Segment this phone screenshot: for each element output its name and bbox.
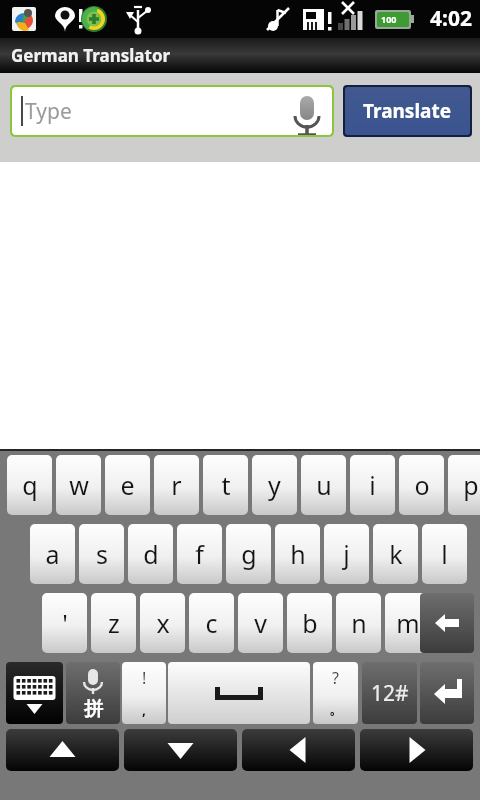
button[interactable]: ' <box>42 593 87 653</box>
button[interactable]: m <box>385 593 430 653</box>
staticText: f <box>195 537 204 571</box>
staticText: b <box>302 606 318 640</box>
button[interactable]: o <box>399 455 444 515</box>
button[interactable]: ? <box>313 662 358 724</box>
staticText: n <box>351 606 367 640</box>
button[interactable]: 拼 <box>66 662 120 724</box>
button[interactable]: v <box>238 593 283 653</box>
staticText: German Translator <box>11 44 171 67</box>
button[interactable]: Hide keyboard <box>6 662 63 724</box>
button[interactable]: Down <box>124 729 237 771</box>
button[interactable]: ! <box>122 662 166 724</box>
staticText: u <box>316 468 332 502</box>
button[interactable]: g <box>226 524 271 584</box>
staticText: l <box>441 537 448 571</box>
button[interactable]: f <box>177 524 222 584</box>
staticText: i <box>369 468 376 502</box>
button[interactable]: d <box>128 524 173 584</box>
button[interactable]: h <box>275 524 320 584</box>
button[interactable]: r <box>154 455 199 515</box>
button[interactable]: q <box>7 455 52 515</box>
button[interactable]: Right <box>360 729 473 771</box>
button[interactable]: a <box>30 524 75 584</box>
staticText: w <box>69 468 89 502</box>
staticText: ? <box>332 667 339 689</box>
staticText: s <box>96 537 108 571</box>
button[interactable]: u <box>301 455 346 515</box>
staticText: a <box>45 537 60 571</box>
staticText: m <box>396 606 420 640</box>
button[interactable]: n <box>336 593 381 653</box>
button[interactable]: p <box>448 455 480 515</box>
button[interactable]: k <box>373 524 418 584</box>
staticText: e <box>120 468 135 502</box>
staticText: 12# <box>371 679 409 708</box>
staticText: k <box>389 537 403 571</box>
staticText: ! <box>142 667 147 689</box>
button[interactable]: e <box>105 455 150 515</box>
button[interactable]: l <box>422 524 467 584</box>
button[interactable]: x <box>140 593 185 653</box>
button[interactable]: Type <box>12 87 332 135</box>
staticText: v <box>254 606 267 640</box>
button[interactable]: Up <box>6 729 119 771</box>
button[interactable]: 12# <box>362 662 417 724</box>
staticText: g <box>241 537 257 571</box>
button[interactable]: Left <box>242 729 355 771</box>
staticText: Type <box>25 97 72 126</box>
button[interactable]: Backspace <box>420 593 474 653</box>
button[interactable]: c <box>189 593 234 653</box>
other: Voice input <box>294 92 320 130</box>
staticText: x <box>156 606 170 640</box>
staticText: 。 <box>329 701 343 719</box>
button[interactable]: z <box>91 593 136 653</box>
staticText: 4:02 <box>430 4 472 33</box>
staticText: ' <box>62 606 68 640</box>
staticText: q <box>22 468 38 502</box>
staticText: 拼 <box>84 697 103 721</box>
staticText: d <box>143 537 159 571</box>
button[interactable]: t <box>203 455 248 515</box>
staticText: , <box>142 700 146 719</box>
button[interactable]: b <box>287 593 332 653</box>
button[interactable]: Translate <box>345 87 470 135</box>
staticText: r <box>171 468 182 502</box>
button[interactable]: j <box>324 524 369 584</box>
button[interactable]: y <box>252 455 297 515</box>
button[interactable]: w <box>56 455 101 515</box>
staticText: p <box>463 468 479 502</box>
button[interactable]: i <box>350 455 395 515</box>
staticText: h <box>290 537 306 571</box>
staticText: y <box>268 468 281 502</box>
staticText: z <box>108 606 120 640</box>
staticText: o <box>414 468 430 502</box>
button[interactable]: s <box>79 524 124 584</box>
staticText: t <box>221 468 231 502</box>
staticText: j <box>343 537 350 571</box>
button[interactable]: Space <box>168 662 310 724</box>
staticText: c <box>205 606 218 640</box>
staticText: Translate <box>363 98 452 124</box>
button[interactable]: Enter <box>420 662 474 724</box>
staticText: 100 <box>381 13 397 25</box>
